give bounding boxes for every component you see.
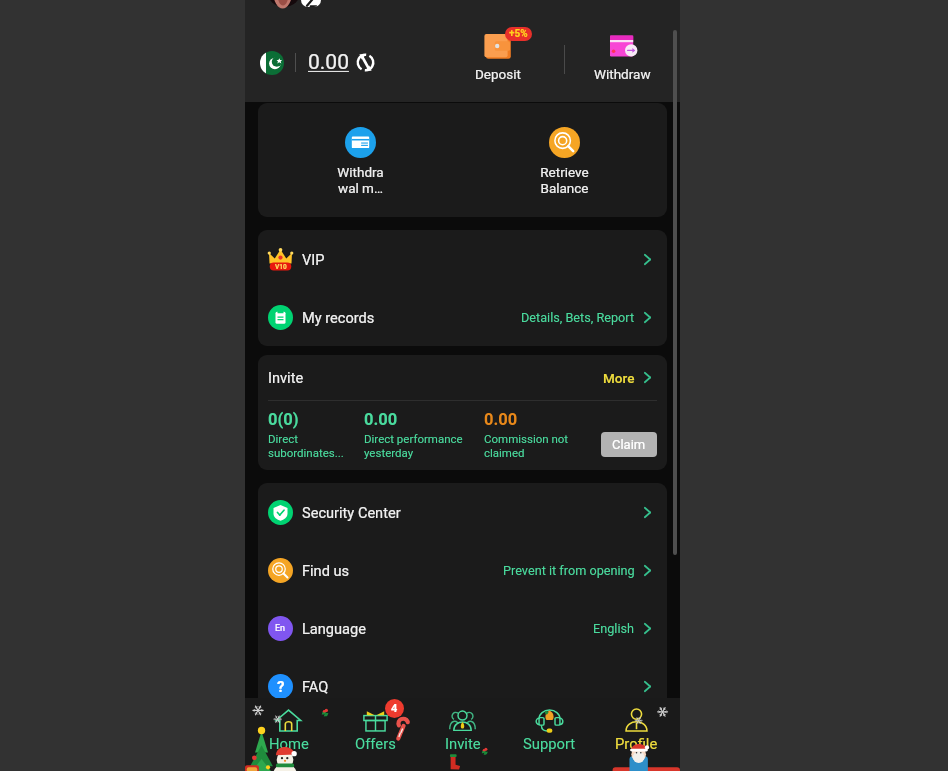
staticText: Withdra wal m… bbox=[337, 164, 384, 197]
staticText: Invite bbox=[268, 369, 304, 386]
staticText: +5% bbox=[509, 28, 528, 40]
staticText: Withdraw bbox=[594, 66, 651, 82]
button[interactable]: My records bbox=[258, 288, 667, 346]
staticText: Find us bbox=[302, 562, 350, 579]
staticText: FAQ bbox=[302, 678, 329, 695]
button[interactable]: En bbox=[258, 599, 667, 657]
button[interactable]: Withdraw bbox=[582, 26, 662, 82]
staticText: Invite bbox=[445, 735, 481, 752]
staticText: Support bbox=[523, 735, 576, 752]
button[interactable]: Retrieve Balance bbox=[462, 103, 667, 217]
staticText: My records bbox=[302, 309, 375, 326]
staticText: Direct subordinates... bbox=[268, 432, 344, 460]
staticText: VIP bbox=[302, 251, 325, 268]
staticText: ? bbox=[277, 678, 285, 696]
staticText: 0.00 bbox=[364, 410, 398, 429]
button[interactable]: Currency bbox=[260, 51, 284, 75]
staticText: Offers bbox=[355, 735, 396, 752]
staticText: Details, Bets, Report bbox=[521, 310, 635, 325]
button[interactable]: Invite bbox=[258, 355, 667, 400]
button[interactable]: V10 bbox=[258, 230, 667, 288]
staticText: Commission not claimed bbox=[484, 432, 569, 460]
staticText: V10 bbox=[275, 263, 287, 271]
button[interactable]: Profile bbox=[593, 698, 680, 771]
button[interactable]: 4 bbox=[332, 698, 419, 771]
staticText: En bbox=[275, 623, 286, 634]
button[interactable]: Withdra wal m… bbox=[258, 103, 462, 217]
staticText: 0.00 bbox=[484, 410, 518, 429]
staticText: 4 bbox=[391, 702, 398, 715]
staticText: Prevent it from opening bbox=[503, 563, 635, 578]
button[interactable]: ? bbox=[258, 657, 667, 715]
staticText: Language bbox=[302, 620, 366, 637]
staticText: 0(0) bbox=[268, 410, 299, 429]
button[interactable]: Security Center bbox=[258, 483, 667, 541]
staticText: Home bbox=[269, 735, 309, 752]
button[interactable]: Home bbox=[245, 698, 332, 771]
staticText: English bbox=[593, 621, 635, 636]
staticText: 0.00 bbox=[308, 50, 349, 75]
button[interactable]: Refresh balance bbox=[356, 53, 375, 72]
button[interactable]: Support bbox=[506, 698, 593, 771]
staticText: Deposit bbox=[475, 66, 521, 82]
staticText: Profile bbox=[615, 735, 658, 752]
button[interactable]: Invite bbox=[419, 698, 506, 771]
button[interactable]: Find us bbox=[258, 541, 667, 599]
button[interactable]: Edit profile bbox=[301, 0, 321, 7]
button[interactable]: Profile photo bbox=[267, 0, 301, 12]
button[interactable]: +5% bbox=[458, 26, 538, 82]
staticText: Retrieve Balance bbox=[540, 164, 589, 197]
button[interactable]: Claim bbox=[601, 432, 657, 457]
staticText: Direct performance yesterday bbox=[364, 432, 463, 460]
staticText: Claim bbox=[612, 437, 646, 452]
staticText: Security Center bbox=[302, 504, 401, 521]
staticText: More bbox=[603, 370, 635, 386]
